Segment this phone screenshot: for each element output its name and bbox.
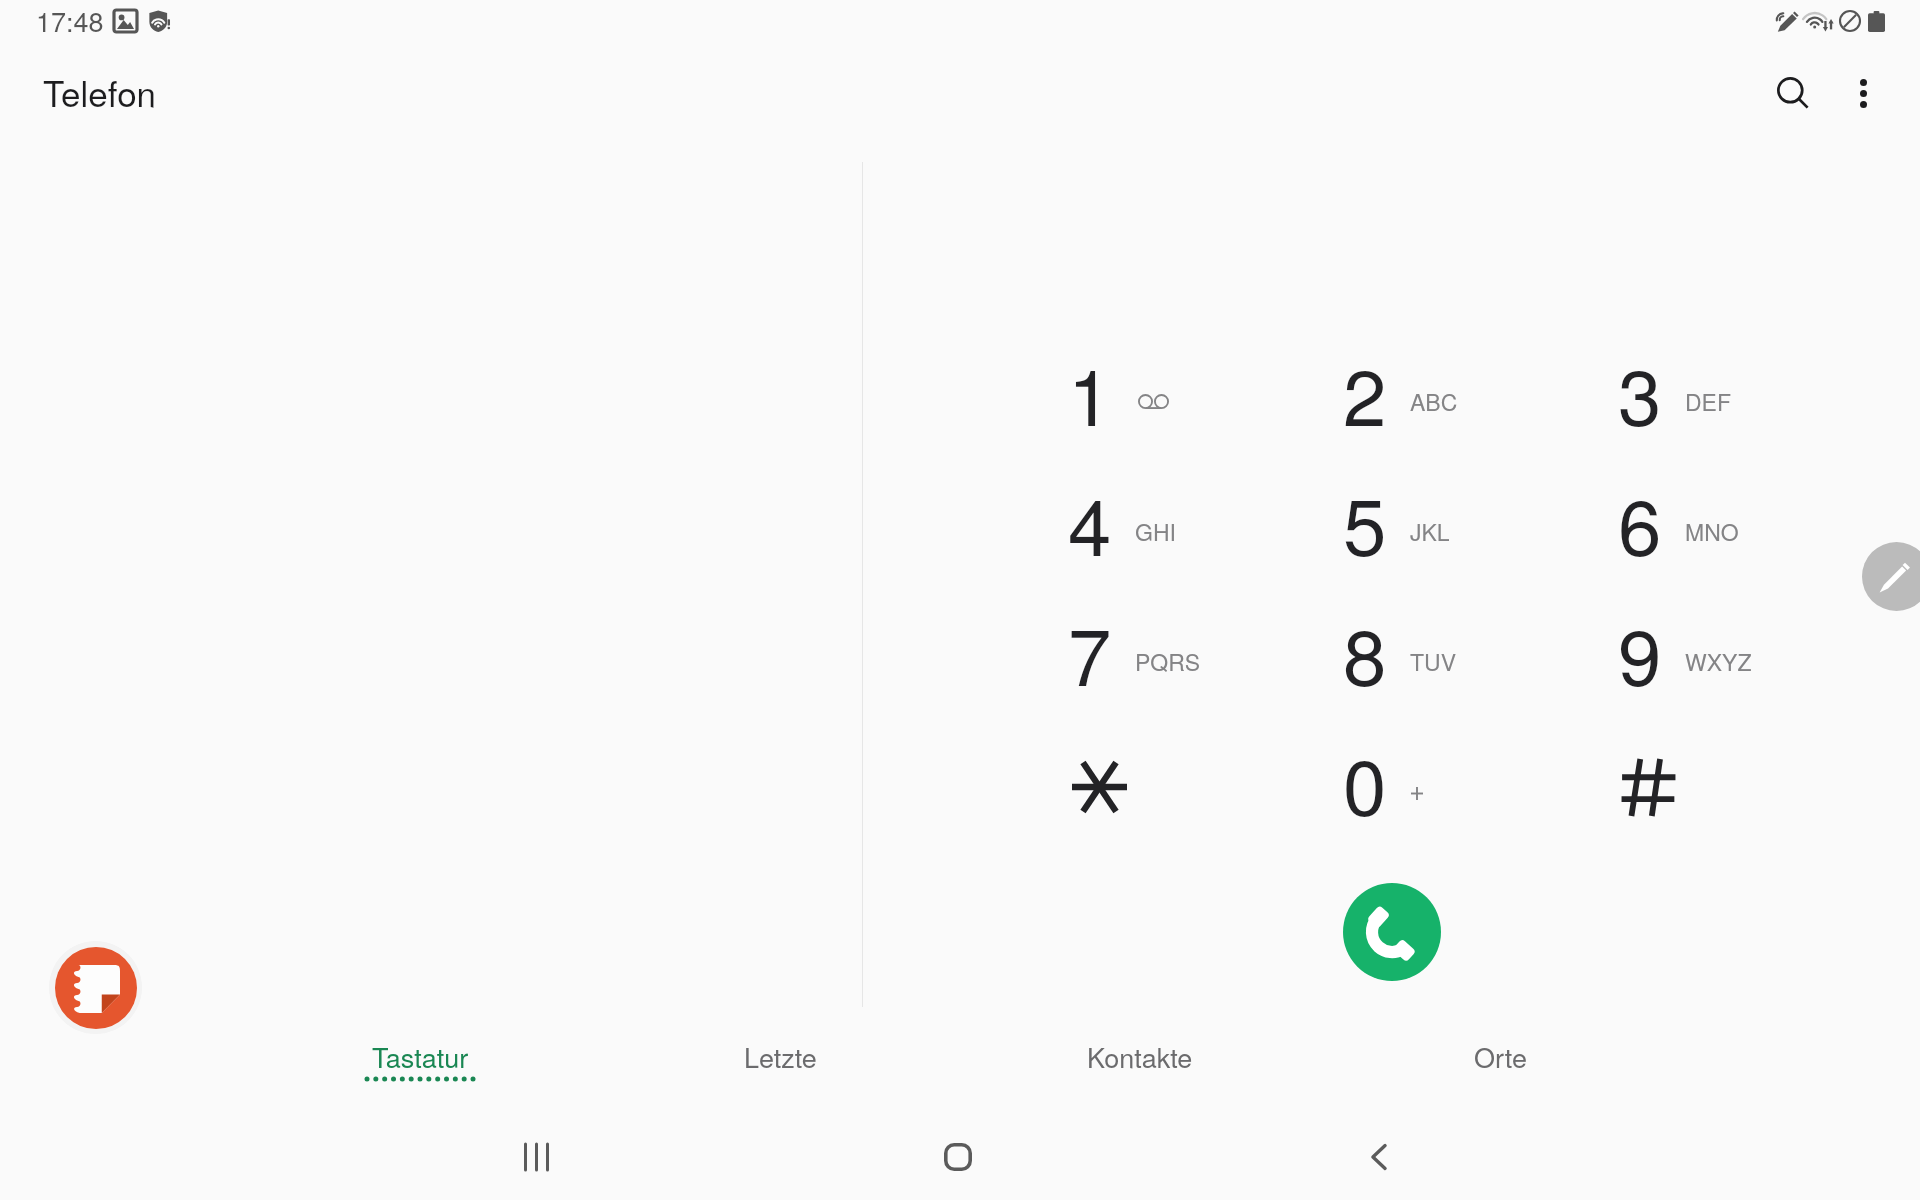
button[interactable]: Key 5 (1291, 461, 1539, 589)
staticText: Letzte (744, 1037, 817, 1076)
button[interactable]: Call (1343, 883, 1441, 981)
button[interactable]: Key 2 (1291, 331, 1539, 459)
staticText: 4 (1068, 466, 1112, 578)
staticText: Tastatur (372, 1037, 469, 1076)
button[interactable]: Key * (1016, 721, 1264, 849)
staticText: 17:48 (36, 1, 104, 40)
button[interactable]: Key 3 (1566, 331, 1814, 459)
staticText: 0 (1343, 726, 1387, 838)
button[interactable]: Key 7 (1016, 591, 1264, 719)
staticText: 2 (1343, 336, 1387, 448)
staticText: GHI (1135, 515, 1176, 548)
staticText: ABC (1410, 385, 1458, 418)
staticText: Kontakte (1087, 1037, 1193, 1076)
button[interactable]: Kontakte (960, 1016, 1320, 1100)
button[interactable]: Key 1 (1016, 331, 1264, 459)
button[interactable]: Key 0 (1291, 721, 1539, 849)
button[interactable]: Tastatur (240, 1016, 600, 1100)
button[interactable]: Back (1319, 1112, 1439, 1200)
staticText: MNO (1685, 515, 1739, 548)
button[interactable]: Search (1754, 54, 1830, 130)
staticText: 9 (1618, 596, 1662, 708)
button[interactable]: Key 6 (1566, 461, 1814, 589)
button[interactable]: Keep notes (49, 941, 142, 1034)
staticText: Orte (1474, 1037, 1527, 1076)
staticText: Telefon (43, 67, 157, 117)
staticText: 3 (1618, 336, 1662, 448)
staticText: 7 (1068, 596, 1112, 708)
button[interactable]: Letzte (600, 1016, 960, 1100)
button[interactable]: More options (1825, 55, 1901, 131)
button[interactable]: Key 4 (1016, 461, 1264, 589)
button[interactable]: Home (898, 1112, 1018, 1200)
button[interactable]: Key 9 (1566, 591, 1814, 719)
staticText: 8 (1343, 596, 1387, 708)
staticText: JKL (1410, 515, 1450, 548)
button[interactable]: Recent apps (476, 1112, 596, 1200)
button[interactable]: Key 8 (1291, 591, 1539, 719)
staticText: DEF (1685, 385, 1731, 418)
staticText: 1 (1068, 336, 1112, 448)
staticText: WXYZ (1685, 645, 1752, 678)
button[interactable]: Key # (1566, 721, 1814, 849)
button[interactable]: Edit (1862, 542, 1920, 611)
button[interactable]: Orte (1320, 1016, 1680, 1100)
staticText: TUV (1410, 645, 1456, 678)
staticText: PQRS (1135, 645, 1201, 678)
staticText: 5 (1343, 466, 1387, 578)
staticText: 6 (1618, 466, 1662, 578)
